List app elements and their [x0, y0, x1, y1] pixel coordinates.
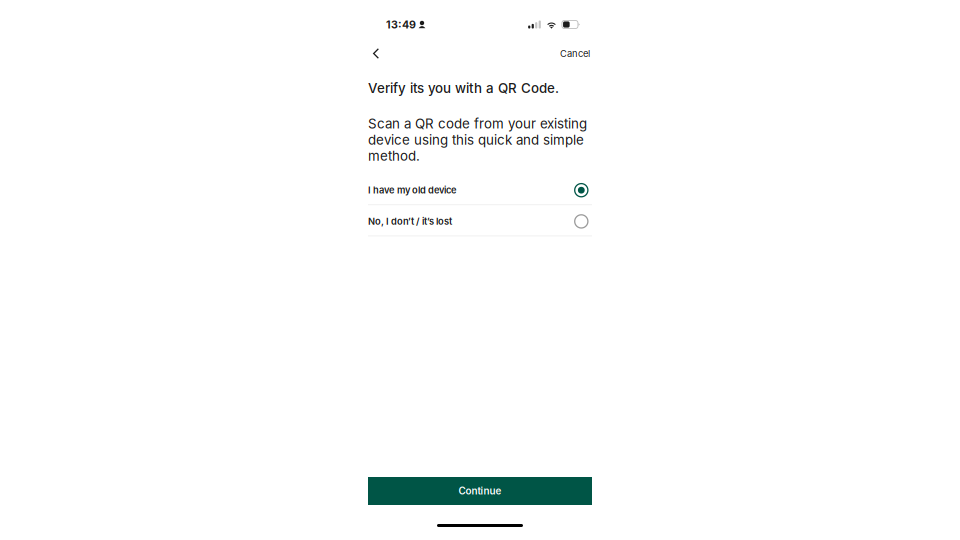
- button[interactable]: Back: [368, 43, 384, 63]
- staticText: I have my old device: [368, 184, 457, 196]
- staticText: 13:49: [386, 18, 416, 31]
- button[interactable]: Continue: [368, 477, 592, 505]
- staticText: Cancel: [560, 48, 590, 59]
- staticText: Continue: [458, 485, 501, 497]
- staticText: No, I don’t / it’s lost: [368, 216, 452, 227]
- button[interactable]: I have my old device: [368, 174, 592, 205]
- button[interactable]: No, I don’t / it’s lost: [368, 205, 592, 236]
- staticText: Scan a QR code from your existing device…: [368, 116, 587, 164]
- button[interactable]: Cancel: [560, 43, 592, 63]
- staticText: Verify its you with a QR Code.: [368, 80, 559, 96]
